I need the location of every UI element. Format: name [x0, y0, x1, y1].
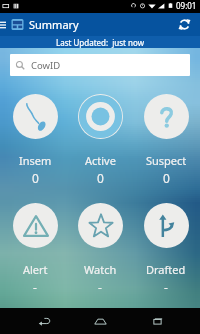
staticText: Active: [85, 153, 116, 168]
staticText: -: [164, 279, 168, 295]
button[interactable]: Navigation menu: [0, 13, 8, 36]
staticText: Drafted: [146, 262, 186, 277]
staticText: -: [98, 279, 102, 295]
button[interactable]: Drafted: [135, 203, 197, 295]
staticText: Suspect: [146, 153, 187, 168]
button[interactable]: Back: [31, 308, 57, 334]
button[interactable]: Recent apps: [144, 308, 170, 334]
staticText: Insem: [19, 153, 52, 168]
staticText: Watch: [84, 262, 117, 277]
button[interactable]: Home: [87, 308, 113, 334]
staticText: 0: [163, 170, 170, 186]
staticText: Alert: [23, 262, 48, 277]
button[interactable]: Suspect: [135, 94, 197, 186]
button[interactable]: Active: [69, 94, 131, 186]
staticText: 0: [32, 170, 39, 186]
staticText: Summary: [29, 17, 79, 32]
button[interactable]: Insem: [4, 94, 66, 186]
staticText: 0: [97, 170, 104, 186]
staticText: CowID: [31, 59, 61, 72]
button[interactable]: Watch: [69, 203, 131, 295]
button[interactable]: Alert: [4, 203, 66, 295]
button[interactable]: Refresh: [173, 13, 195, 36]
staticText: Last Updated: just now: [56, 37, 144, 48]
staticText: 09:01: [176, 0, 197, 11]
staticText: -: [33, 279, 37, 295]
button[interactable]: CowID: [10, 54, 190, 76]
